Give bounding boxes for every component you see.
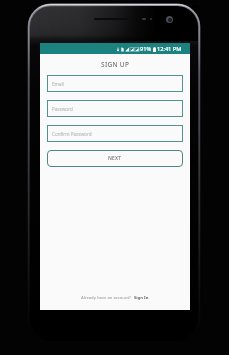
staticText: SIGN UP xyxy=(101,60,130,69)
staticText: Password xyxy=(52,106,73,112)
button[interactable]: NEXT xyxy=(47,150,183,167)
staticText: 91% xyxy=(140,45,152,53)
staticText: NEXT xyxy=(108,155,122,162)
staticText: 12:41 PM xyxy=(157,45,182,53)
staticText: Already have an account? xyxy=(81,295,134,301)
staticText: Sign In xyxy=(134,295,149,301)
staticText: Email xyxy=(52,81,64,87)
button[interactable]: Already have an account? xyxy=(77,293,153,303)
button[interactable]: Email xyxy=(47,75,183,92)
staticText: Confirm Password xyxy=(52,131,92,137)
button[interactable]: Password xyxy=(47,100,183,117)
button[interactable]: Confirm Password xyxy=(47,125,183,142)
